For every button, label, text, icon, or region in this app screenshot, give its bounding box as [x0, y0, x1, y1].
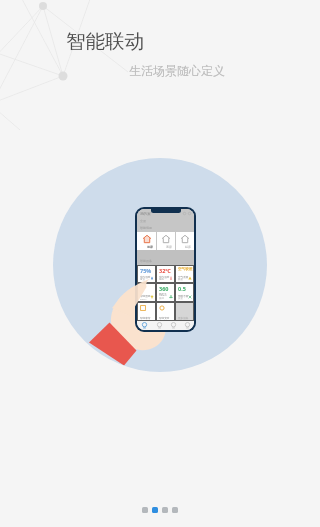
staticText: 室内湿度 [140, 275, 151, 278]
staticText: 我的家 [140, 212, 151, 217]
staticText: 智能联动 [66, 29, 144, 54]
staticText: 室内温度 [159, 275, 170, 278]
staticText: 更多设备 [178, 316, 189, 319]
button[interactable] [137, 321, 152, 330]
button[interactable]: 智能照明 [138, 284, 155, 301]
staticText: 智能窗帘 [140, 316, 151, 319]
staticText: 智能照明 [140, 294, 151, 297]
staticText: 360 [159, 285, 169, 292]
staticText: 75% [140, 267, 152, 274]
button[interactable]: 智能窗帘 [138, 303, 155, 320]
staticText: 0.5 [178, 285, 186, 292]
button[interactable]: 360 [157, 284, 174, 301]
button[interactable] [162, 507, 168, 513]
button[interactable]: 离家 [157, 232, 175, 250]
button[interactable] [172, 507, 178, 513]
button[interactable] [180, 321, 194, 330]
staticText: PM2.5 [159, 293, 167, 297]
button[interactable] [152, 507, 158, 513]
staticText: 32℃ [159, 267, 171, 274]
button[interactable]: 空气较差 [176, 266, 193, 282]
button[interactable]: 起床 [176, 232, 194, 250]
staticText: 较差 [178, 278, 183, 281]
staticText: 空气较差 [178, 267, 193, 272]
staticText: Part.1 [140, 297, 147, 300]
staticText: 回家 [147, 245, 153, 249]
button[interactable]: 0.5 [176, 284, 193, 301]
staticText: 甲醛含量 [178, 294, 189, 297]
button[interactable]: 75% [138, 266, 155, 282]
staticText: 偏高 [159, 278, 164, 281]
staticText: 空气质量 [178, 275, 189, 278]
button[interactable] [152, 321, 166, 330]
staticText: 安全 [178, 297, 183, 300]
staticText: 离家 [166, 245, 172, 249]
staticText: 生活场景随心定义 [129, 63, 225, 78]
button[interactable]: 智能安防 [157, 303, 174, 320]
staticText: 起床 [185, 245, 191, 249]
staticText: 智能设备 [140, 259, 152, 263]
staticText: 良好 [159, 297, 164, 300]
button[interactable] [142, 507, 148, 513]
button[interactable]: 回家 [137, 232, 156, 250]
button[interactable]: 更多设备 [176, 303, 193, 320]
staticText: 适宜 [140, 278, 145, 281]
button[interactable]: 32℃ [157, 266, 174, 282]
staticText: 智能安防 [159, 316, 170, 319]
button[interactable] [166, 321, 180, 330]
staticText: 全屋 [140, 219, 146, 223]
staticText: 智能场景 [140, 226, 152, 230]
